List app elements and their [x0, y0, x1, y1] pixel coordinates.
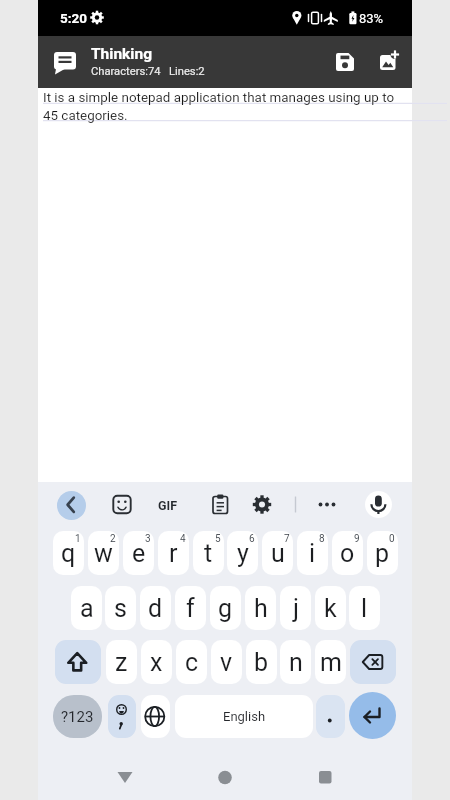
- button[interactable]: v: [211, 640, 242, 684]
- staticText: Thinking: [91, 45, 152, 63]
- button[interactable]: English: [175, 695, 313, 738]
- staticText: k: [324, 594, 337, 623]
- staticText: 7: [284, 533, 290, 545]
- button[interactable]: [365, 491, 392, 518]
- button[interactable]: l: [349, 586, 380, 630]
- staticText: ?123: [61, 708, 94, 726]
- staticText: 2: [110, 533, 116, 545]
- button[interactable]: [48, 46, 82, 80]
- button[interactable]: [251, 493, 273, 515]
- button[interactable]: [350, 640, 396, 684]
- staticText: z: [115, 648, 128, 677]
- staticText: 1: [75, 533, 81, 545]
- staticText: d: [148, 594, 163, 623]
- staticText: a: [80, 594, 94, 623]
- button[interactable]: u: [262, 531, 293, 575]
- staticText: English: [223, 709, 266, 724]
- staticText: h: [254, 594, 268, 623]
- button[interactable]: [330, 47, 360, 77]
- button[interactable]: [108, 695, 136, 738]
- staticText: 8: [319, 533, 325, 545]
- staticText: 5: [215, 533, 221, 545]
- staticText: 0: [389, 533, 395, 545]
- button[interactable]: [305, 758, 345, 798]
- button[interactable]: o: [332, 531, 363, 575]
- button[interactable]: g: [210, 586, 241, 630]
- staticText: n: [289, 648, 303, 677]
- button[interactable]: a: [71, 586, 102, 630]
- button[interactable]: j: [280, 586, 311, 630]
- staticText: 4: [180, 533, 186, 545]
- button[interactable]: c: [176, 640, 207, 684]
- button[interactable]: [57, 491, 86, 520]
- staticText: m: [320, 648, 342, 677]
- button[interactable]: ?123: [53, 695, 102, 738]
- staticText: o: [340, 539, 355, 568]
- staticText: 6: [249, 533, 255, 545]
- button[interactable]: [316, 695, 345, 738]
- button[interactable]: [349, 692, 396, 739]
- staticText: 9: [354, 533, 360, 545]
- staticText: f: [186, 594, 195, 623]
- button[interactable]: x: [141, 640, 172, 684]
- staticText: GIF: [158, 498, 178, 513]
- staticText: r: [169, 539, 178, 568]
- button[interactable]: [159, 493, 185, 519]
- button[interactable]: t: [193, 531, 224, 575]
- staticText: 5:20: [60, 10, 88, 26]
- button[interactable]: e: [123, 531, 154, 575]
- button[interactable]: b: [246, 640, 277, 684]
- staticText: u: [271, 539, 285, 568]
- button[interactable]: h: [245, 586, 276, 630]
- staticText: i: [309, 539, 316, 568]
- staticText: p: [375, 539, 390, 568]
- button[interactable]: z: [106, 640, 137, 684]
- button[interactable]: m: [315, 640, 346, 684]
- button[interactable]: y: [227, 531, 258, 575]
- button[interactable]: f: [175, 586, 206, 630]
- staticText: g: [218, 594, 233, 623]
- button[interactable]: r: [158, 531, 189, 575]
- staticText: t: [204, 539, 213, 568]
- button[interactable]: [205, 758, 245, 798]
- button[interactable]: [141, 695, 170, 738]
- button[interactable]: n: [280, 640, 311, 684]
- button[interactable]: [55, 640, 101, 684]
- button[interactable]: s: [105, 586, 136, 630]
- staticText: Characters:74: [91, 65, 161, 78]
- staticText: 3: [145, 533, 151, 545]
- button[interactable]: p: [367, 531, 398, 575]
- staticText: e: [132, 539, 146, 568]
- staticText: l: [361, 594, 368, 623]
- button[interactable]: [111, 493, 133, 515]
- button[interactable]: i: [297, 531, 328, 575]
- staticText: q: [61, 539, 76, 568]
- button[interactable]: [374, 47, 404, 77]
- staticText: y: [237, 539, 249, 568]
- button[interactable]: d: [140, 586, 171, 630]
- button[interactable]: [105, 758, 145, 798]
- button[interactable]: w: [88, 531, 119, 575]
- staticText: s: [114, 594, 127, 623]
- staticText: x: [150, 648, 163, 677]
- staticText: w: [94, 539, 113, 568]
- staticText: 83%: [359, 11, 384, 26]
- staticText: v: [220, 648, 233, 677]
- staticText: j: [293, 594, 299, 623]
- staticText: It is a simple notepad application that …: [43, 90, 395, 123]
- staticText: Lines:2: [169, 65, 205, 78]
- button[interactable]: [209, 493, 231, 515]
- button[interactable]: q: [53, 531, 84, 575]
- staticText: c: [185, 648, 199, 677]
- staticText: b: [254, 648, 269, 677]
- button[interactable]: [316, 493, 338, 515]
- button[interactable]: k: [315, 586, 346, 630]
